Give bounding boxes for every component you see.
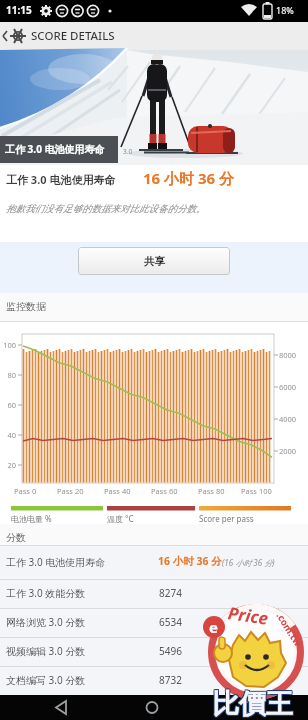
staticText: 40: [0, 430, 16, 440]
staticText: Price: [227, 601, 270, 630]
staticText: 80: [0, 370, 16, 380]
staticText: 比價王: [212, 688, 293, 720]
staticText: 工作 3.0 电池使用寿命: [5, 142, 105, 156]
staticText: e: [209, 617, 218, 637]
staticText: 8732: [159, 673, 182, 687]
staticText: 工作 3.0 电池使用寿命: [6, 172, 116, 187]
staticText: 2000: [279, 446, 297, 456]
staticText: 3.0: [123, 147, 133, 156]
staticText: 16 小时 36 分: [158, 554, 222, 568]
staticText: 比價王: [211, 688, 292, 720]
staticText: (16 小时 36 分): [222, 557, 275, 568]
button[interactable]: 共享: [78, 247, 230, 275]
staticText: 16 小时 36 分: [143, 168, 235, 188]
staticText: 共享: [144, 255, 165, 268]
staticText: 监控数据: [6, 300, 46, 313]
staticText: Pass 0: [14, 486, 37, 496]
staticText: Score per pass: [199, 513, 254, 524]
staticText: Pass 60: [151, 486, 178, 496]
button[interactable]: 工作 3.0 效能分数: [0, 579, 308, 608]
staticText: 20: [0, 460, 16, 470]
staticText: 6000: [279, 382, 297, 392]
staticText: 比價王: [211, 686, 292, 720]
button[interactable]: [137, 695, 167, 720]
staticText: 工作 3.0 效能分数: [6, 586, 86, 600]
staticText: 工作 3.0 电池使用寿命: [6, 555, 106, 569]
staticText: Pass 40: [104, 486, 131, 496]
staticText: 网络浏览 3.0 分数: [6, 615, 86, 629]
staticText: 18%: [276, 4, 294, 16]
staticText: 温度 °C: [107, 513, 134, 524]
staticText: 4000: [279, 414, 297, 424]
staticText: 100: [0, 340, 16, 350]
staticText: 5496: [159, 644, 182, 658]
staticText: .com.tw: [273, 610, 305, 649]
staticText: 视频编辑 3.0 分数: [6, 644, 86, 658]
staticText: 8274: [159, 586, 182, 600]
staticText: 抱歉我们没有足够的数据来对比此设备的分数。: [6, 203, 206, 215]
staticText: 比價王: [213, 686, 294, 720]
button[interactable]: 工作 3.0 电池使用寿命: [0, 546, 308, 579]
button[interactable]: 视频编辑 3.0 分数: [0, 637, 308, 666]
button[interactable]: SCORE DETAILS: [0, 22, 308, 50]
staticText: 比價王: [213, 688, 294, 720]
button[interactable]: [50, 695, 80, 720]
staticText: 8000: [279, 350, 297, 360]
staticText: Pass 80: [198, 486, 225, 496]
button[interactable]: 网络浏览 3.0 分数: [0, 608, 308, 637]
button[interactable]: [233, 695, 263, 720]
staticText: Pass 20: [57, 486, 84, 496]
staticText: Pass 100: [241, 486, 272, 496]
staticText: 文档编写 3.0 分数: [6, 673, 86, 687]
staticText: 6534: [159, 615, 182, 629]
staticText: 比價王: [212, 687, 293, 720]
staticText: 比價王: [212, 686, 293, 720]
staticText: 电池电量 %: [11, 513, 52, 524]
button[interactable]: 文档编写 3.0 分数: [0, 666, 308, 695]
staticText: SCORE DETAILS: [31, 28, 115, 44]
staticText: 比價王: [211, 687, 292, 720]
staticText: 分数: [6, 531, 26, 544]
staticText: 比價王: [213, 687, 294, 720]
staticText: 60: [0, 400, 16, 410]
staticText: 11:15: [6, 3, 32, 17]
